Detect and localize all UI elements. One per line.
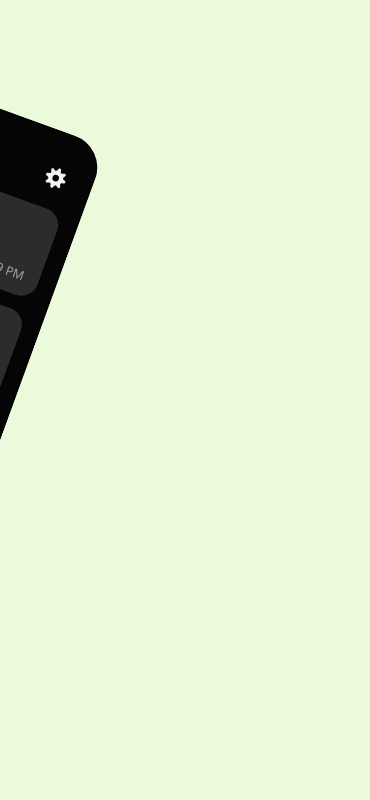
button[interactable]: Project kickoff: [0, 200, 27, 400]
button[interactable]: Settings: [30, 152, 81, 203]
button[interactable]: Grocery list: [0, 100, 63, 301]
staticText: 02:09 PM: [0, 249, 27, 284]
